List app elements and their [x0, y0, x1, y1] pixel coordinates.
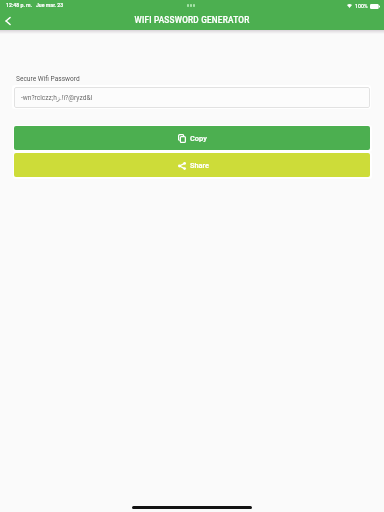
button[interactable]: Copy [14, 126, 370, 150]
staticText: Share [190, 161, 210, 170]
staticText: Copy [190, 134, 207, 143]
staticText: Secure Wifi Password [16, 75, 80, 83]
button[interactable]: Back [0, 13, 16, 29]
staticText: -wn?rclczz;hز.!ì?@ryzd&l [21, 94, 93, 102]
button[interactable]: -wn?rclczz;hز.!ì?@ryzd&l [14, 87, 370, 108]
button[interactable]: Share [14, 153, 370, 177]
staticText: 12:48 p. m. Jue mar. 23 [6, 2, 64, 8]
staticText: 100% [355, 3, 368, 9]
staticText: WIFI PASSWORD GENERATOR [134, 15, 250, 25]
